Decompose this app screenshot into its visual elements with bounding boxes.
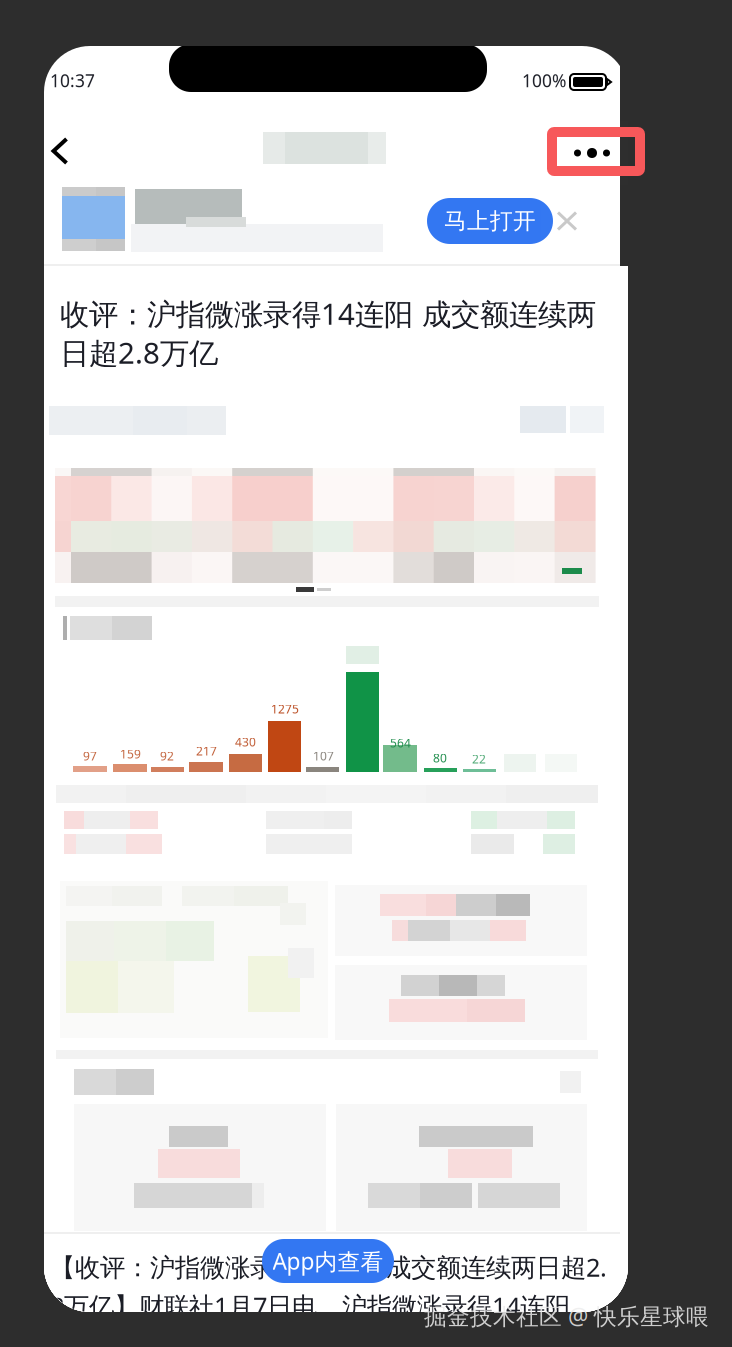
staticText: 掘金技术社区 @ 快乐星球喂 (424, 1301, 709, 1331)
staticText: 217 (196, 743, 217, 759)
staticText: 【收评：沪指微涨录得14连阳 成交额连续两日超2. (50, 1250, 607, 1284)
staticText: 159 (120, 746, 141, 762)
staticText: 107 (313, 748, 334, 764)
staticText: 10:37 (50, 69, 95, 92)
staticText: 1275 (271, 701, 299, 717)
staticText: App内查看 (272, 1246, 383, 1276)
button[interactable]: Close (541, 195, 593, 247)
staticText: 收评：沪指微涨录得14连阳 成交额连续两日超2.8万亿 (60, 294, 596, 372)
button[interactable]: 马上打开 (427, 198, 553, 244)
button[interactable]: Back (28, 119, 92, 183)
staticText: 97 (83, 748, 97, 764)
staticText: 8万亿】财联社1月7日电，沪指微涨录得14连阳 (50, 1289, 570, 1323)
staticText: 100% (522, 69, 566, 92)
staticText: 564 (390, 735, 411, 751)
staticText: 430 (235, 734, 256, 750)
staticText: 80 (433, 750, 447, 766)
staticText: 92 (160, 748, 174, 764)
button[interactable]: App内查看 (262, 1239, 394, 1283)
staticText: 马上打开 (444, 207, 536, 235)
staticText: 22 (472, 751, 486, 767)
button[interactable]: More (544, 121, 640, 185)
